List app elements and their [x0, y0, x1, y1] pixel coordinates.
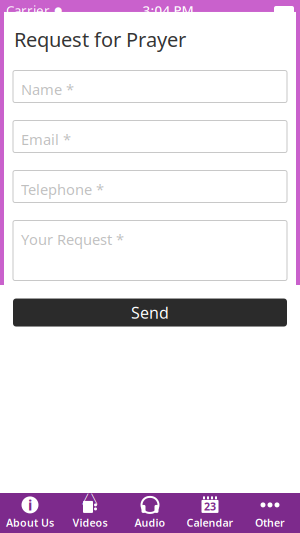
staticText: 3:04 PM [142, 1, 193, 19]
button[interactable]: 23 [180, 493, 240, 533]
staticText: ╲ [91, 494, 97, 504]
staticText: 23 [204, 499, 216, 513]
staticText: ‹ [13, 7, 24, 60]
button[interactable]: Other [240, 493, 300, 533]
staticText: ● [54, 5, 62, 15]
staticText: Send [131, 302, 169, 323]
staticText: Email * [21, 129, 71, 149]
staticText: i [28, 495, 32, 515]
staticText: Videos [72, 515, 107, 530]
staticText: OASIS [104, 14, 195, 53]
staticText: Calendar [186, 515, 233, 530]
button[interactable]: Audio [120, 493, 180, 533]
button[interactable]: Back [0, 20, 38, 48]
button[interactable]: ╱ [60, 493, 120, 533]
staticText: Request for Prayer [14, 26, 186, 53]
button[interactable]: i [0, 493, 60, 533]
staticText: Audio [134, 515, 165, 530]
staticText: Your Request * [21, 229, 124, 249]
staticText: Telephone * [21, 179, 104, 199]
staticText: Other [255, 515, 285, 530]
button[interactable]: Send [13, 298, 287, 326]
staticText: Name * [21, 79, 74, 99]
staticText: ╱ [82, 494, 88, 504]
staticText: Carrier [6, 1, 50, 19]
staticText: About Us [6, 515, 54, 530]
